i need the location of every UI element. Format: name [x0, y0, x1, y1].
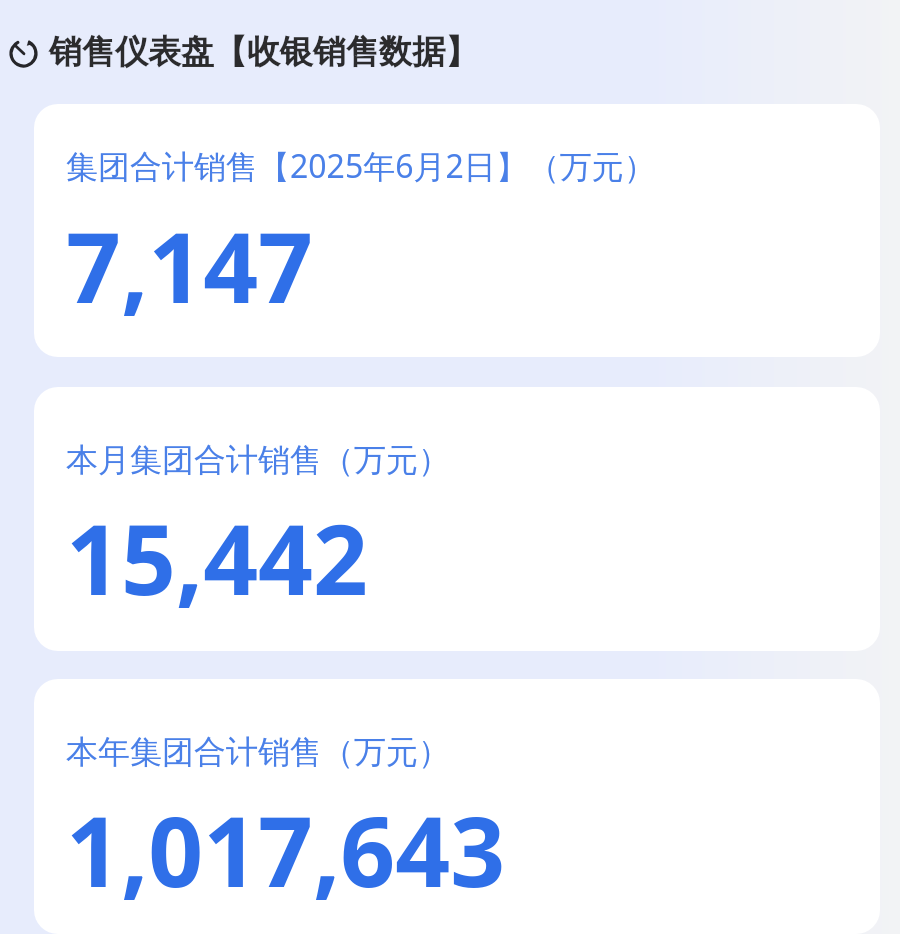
- staticText: 本年集团合计销售（万元）: [66, 732, 450, 772]
- staticText: 集团合计销售【2025年6月2日】（万元）: [66, 144, 656, 188]
- staticText: 15,442: [66, 492, 368, 623]
- staticText: 1,017,643: [66, 784, 506, 915]
- button[interactable]: 本月集团合计销售（万元）: [34, 387, 880, 651]
- staticText: 7,147: [66, 200, 314, 331]
- button[interactable]: 本年集团合计销售（万元）: [34, 679, 880, 934]
- staticText: 本月集团合计销售（万元）: [66, 440, 450, 480]
- button[interactable]: 集团合计销售【2025年6月2日】（万元）: [34, 104, 880, 357]
- staticText: 销售仪表盘【收银销售数据】: [49, 31, 478, 73]
- other: Recent data timestamp: [8, 38, 39, 69]
- button[interactable]: Recent data timestamp: [0, 0, 900, 104]
